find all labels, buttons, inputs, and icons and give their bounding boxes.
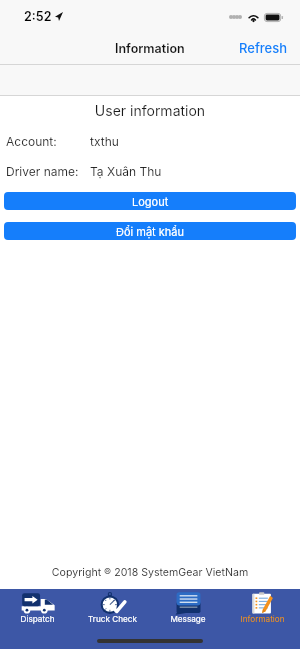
staticText: Refresh — [239, 40, 288, 56]
button[interactable]: Đổi mật khẩu — [4, 222, 296, 240]
staticText: 2:52 — [24, 9, 52, 24]
button[interactable]: Logout — [4, 192, 296, 210]
staticText: Copyright ® 2018 SystemGear VietNam — [0, 566, 300, 579]
staticText: Logout — [132, 195, 169, 208]
staticText: Tạ Xuân Thu — [90, 164, 162, 179]
staticText: Information — [240, 614, 285, 624]
staticText: Account: — [6, 134, 57, 149]
staticText: Truck Check — [88, 614, 137, 624]
staticText: txthu — [90, 134, 119, 149]
button[interactable]: Refresh — [239, 40, 300, 56]
staticText: Message — [170, 614, 206, 624]
button[interactable]: Information — [225, 589, 300, 649]
staticText: Driver name: — [6, 164, 79, 179]
staticText: Information — [115, 41, 185, 56]
staticText: Dispatch — [20, 614, 55, 624]
button[interactable]: Message — [150, 589, 225, 649]
staticText: Đổi mật khẩu — [116, 225, 185, 238]
button[interactable]: Dispatch — [0, 589, 75, 649]
button[interactable]: Truck Check — [75, 589, 150, 649]
staticText: User information — [0, 102, 300, 119]
